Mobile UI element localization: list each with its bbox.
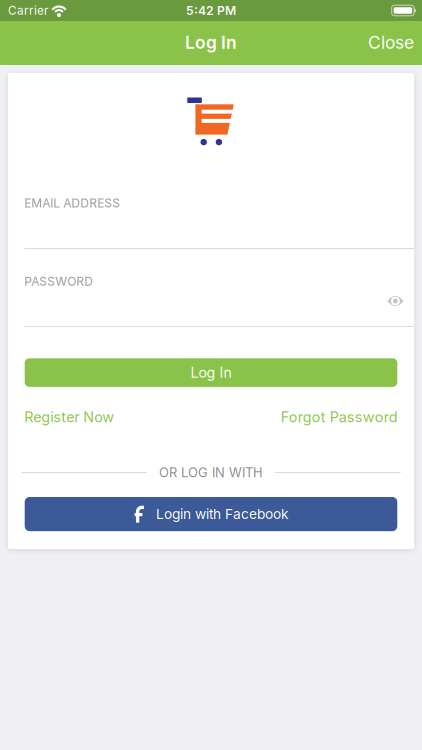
staticText: EMAIL ADDRESS bbox=[24, 196, 120, 210]
staticText: PASSWORD bbox=[24, 274, 93, 289]
staticText: 5:42 PM bbox=[186, 3, 236, 18]
staticText: Log In bbox=[190, 364, 231, 381]
button[interactable]: Log In bbox=[25, 358, 397, 387]
button[interactable]: Close bbox=[368, 32, 414, 53]
staticText: Login with Facebook bbox=[156, 506, 289, 522]
staticText: OR LOG IN WITH bbox=[159, 465, 263, 480]
staticText: Register Now bbox=[24, 408, 114, 426]
button[interactable]: Login with Facebook bbox=[25, 497, 397, 531]
button[interactable]: Show password bbox=[387, 295, 404, 307]
button[interactable]: Forgot Password bbox=[281, 408, 398, 426]
staticText: Close bbox=[368, 32, 414, 53]
button[interactable]: Register Now bbox=[24, 408, 114, 426]
staticText: Carrier bbox=[8, 3, 48, 18]
staticText: Forgot Password bbox=[281, 408, 398, 426]
staticText: Log In bbox=[185, 32, 237, 53]
